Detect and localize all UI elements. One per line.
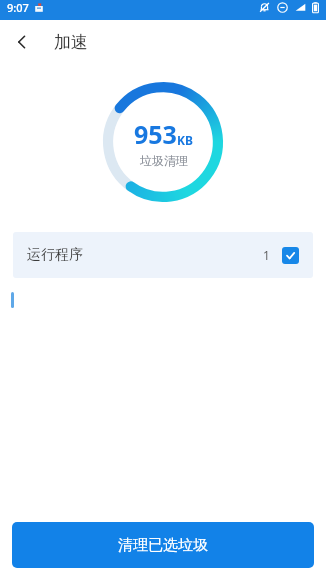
- button[interactable]: Selected: [282, 247, 299, 264]
- button[interactable]: Back: [0, 20, 44, 64]
- button[interactable]: 运行程序: [13, 232, 313, 278]
- button[interactable]: 清理已选垃圾: [12, 522, 314, 568]
- staticText: 953: [134, 117, 177, 151]
- staticText: 9:07: [7, 0, 29, 15]
- staticText: 清理已选垃圾: [118, 536, 208, 555]
- staticText: 运行程序: [27, 246, 83, 264]
- staticText: 垃圾清理: [140, 153, 188, 168]
- staticText: 1: [263, 247, 270, 263]
- staticText: 加速: [54, 32, 88, 53]
- staticText: KB: [177, 132, 193, 148]
